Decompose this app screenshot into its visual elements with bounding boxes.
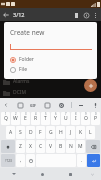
staticText: Alarms [13, 78, 30, 85]
staticText: Folder [19, 56, 34, 63]
button[interactable]: 9 [81, 112, 90, 125]
staticText: K [79, 129, 83, 136]
staticText: DCIM [13, 89, 27, 96]
staticText: D [29, 129, 33, 136]
button[interactable]: 8 [71, 112, 80, 125]
button[interactable]: 2 [11, 112, 20, 125]
button[interactable]: Info [81, 10, 91, 20]
staticText: O [84, 115, 88, 122]
staticText: H [59, 129, 63, 136]
button[interactable]: DCIM [0, 87, 101, 98]
button[interactable]: Enter [87, 154, 100, 167]
staticText: G [49, 129, 53, 136]
button[interactable]: G [46, 126, 55, 139]
staticText: S [19, 129, 22, 136]
staticText: Q [4, 115, 8, 122]
button[interactable]: Symbols [1, 154, 15, 167]
staticText: 3 [25, 112, 27, 116]
staticText: ?123 [5, 159, 12, 163]
button[interactable]: K [76, 126, 85, 139]
button[interactable]: 1 [1, 112, 10, 125]
staticText: 3/12 [13, 11, 25, 18]
button[interactable]: Hide keyboard [84, 168, 101, 180]
button[interactable]: Settings [57, 101, 65, 109]
staticText: A [9, 129, 13, 136]
button[interactable]: N [66, 140, 75, 153]
button[interactable]: Alarms [0, 76, 101, 87]
button[interactable]: B [56, 140, 65, 153]
staticText: L [89, 129, 92, 136]
staticText: 8 [75, 112, 77, 116]
staticText: R [34, 115, 38, 122]
button[interactable]: GIF [29, 101, 37, 109]
staticText: Z [19, 143, 22, 150]
staticText: I [75, 115, 77, 122]
staticText: B [59, 143, 63, 150]
button[interactable]: J [66, 126, 75, 139]
staticText: T [44, 115, 47, 122]
staticText: 1 [5, 112, 7, 116]
button[interactable]: V [46, 140, 55, 153]
staticText: 0 [95, 112, 97, 116]
button[interactable]: Storage [71, 10, 81, 20]
button[interactable]: Recents [56, 168, 84, 180]
button[interactable]: Backspace [86, 140, 100, 153]
button[interactable]: Z [16, 140, 25, 153]
button[interactable]: D [26, 126, 35, 139]
button[interactable]: Voice input [91, 101, 99, 109]
staticText: N [69, 143, 73, 150]
staticText: F [39, 129, 42, 136]
staticText: . [81, 157, 83, 164]
staticText: 4 [35, 112, 37, 116]
button[interactable]: S [16, 126, 25, 139]
staticText: V [49, 143, 53, 150]
button[interactable]: H [56, 126, 65, 139]
button[interactable]: Add [84, 79, 97, 92]
staticText: M [78, 143, 83, 150]
staticText: C [39, 143, 43, 150]
button[interactable]: 5 [41, 112, 50, 125]
staticText: X [29, 143, 32, 150]
button[interactable]: More [77, 101, 85, 109]
button[interactable]: . [77, 154, 86, 167]
staticText: File [19, 66, 27, 73]
button[interactable]: More options [91, 11, 100, 20]
staticText: , [20, 157, 22, 164]
button[interactable]: Emoji [26, 154, 35, 167]
button[interactable]: Shift [1, 140, 15, 153]
button[interactable]: Stickers [16, 101, 24, 109]
button[interactable]: X [26, 140, 35, 153]
button[interactable]: 7 [61, 112, 70, 125]
button[interactable]: Home [28, 168, 56, 180]
staticText: Create new [10, 28, 45, 37]
button[interactable]: A [6, 126, 15, 139]
staticText: W [13, 115, 18, 122]
button[interactable]: Back [0, 9, 11, 20]
button[interactable]: , [16, 154, 25, 167]
staticText: P [94, 115, 98, 122]
staticText: 5 [45, 112, 47, 116]
button[interactable]: C [36, 140, 45, 153]
staticText: 2 [15, 112, 17, 116]
staticText: 7 [65, 112, 67, 116]
button[interactable]: L [86, 126, 95, 139]
button[interactable]: 6 [51, 112, 60, 125]
button[interactable]: F [36, 126, 45, 139]
button[interactable]: M [76, 140, 85, 153]
button[interactable]: Folder [10, 56, 92, 63]
button[interactable]: File [10, 66, 92, 73]
button[interactable]: 0 [91, 112, 100, 125]
staticText: Y [54, 115, 57, 122]
button[interactable]: 4 [31, 112, 40, 125]
button[interactable] [10, 44, 92, 50]
button[interactable]: Clipboard [43, 101, 51, 109]
staticText: 9 [85, 112, 87, 116]
button[interactable]: Expand toolbar [2, 101, 10, 109]
button[interactable]: Back [0, 168, 28, 180]
button[interactable]: 3 [21, 112, 30, 125]
